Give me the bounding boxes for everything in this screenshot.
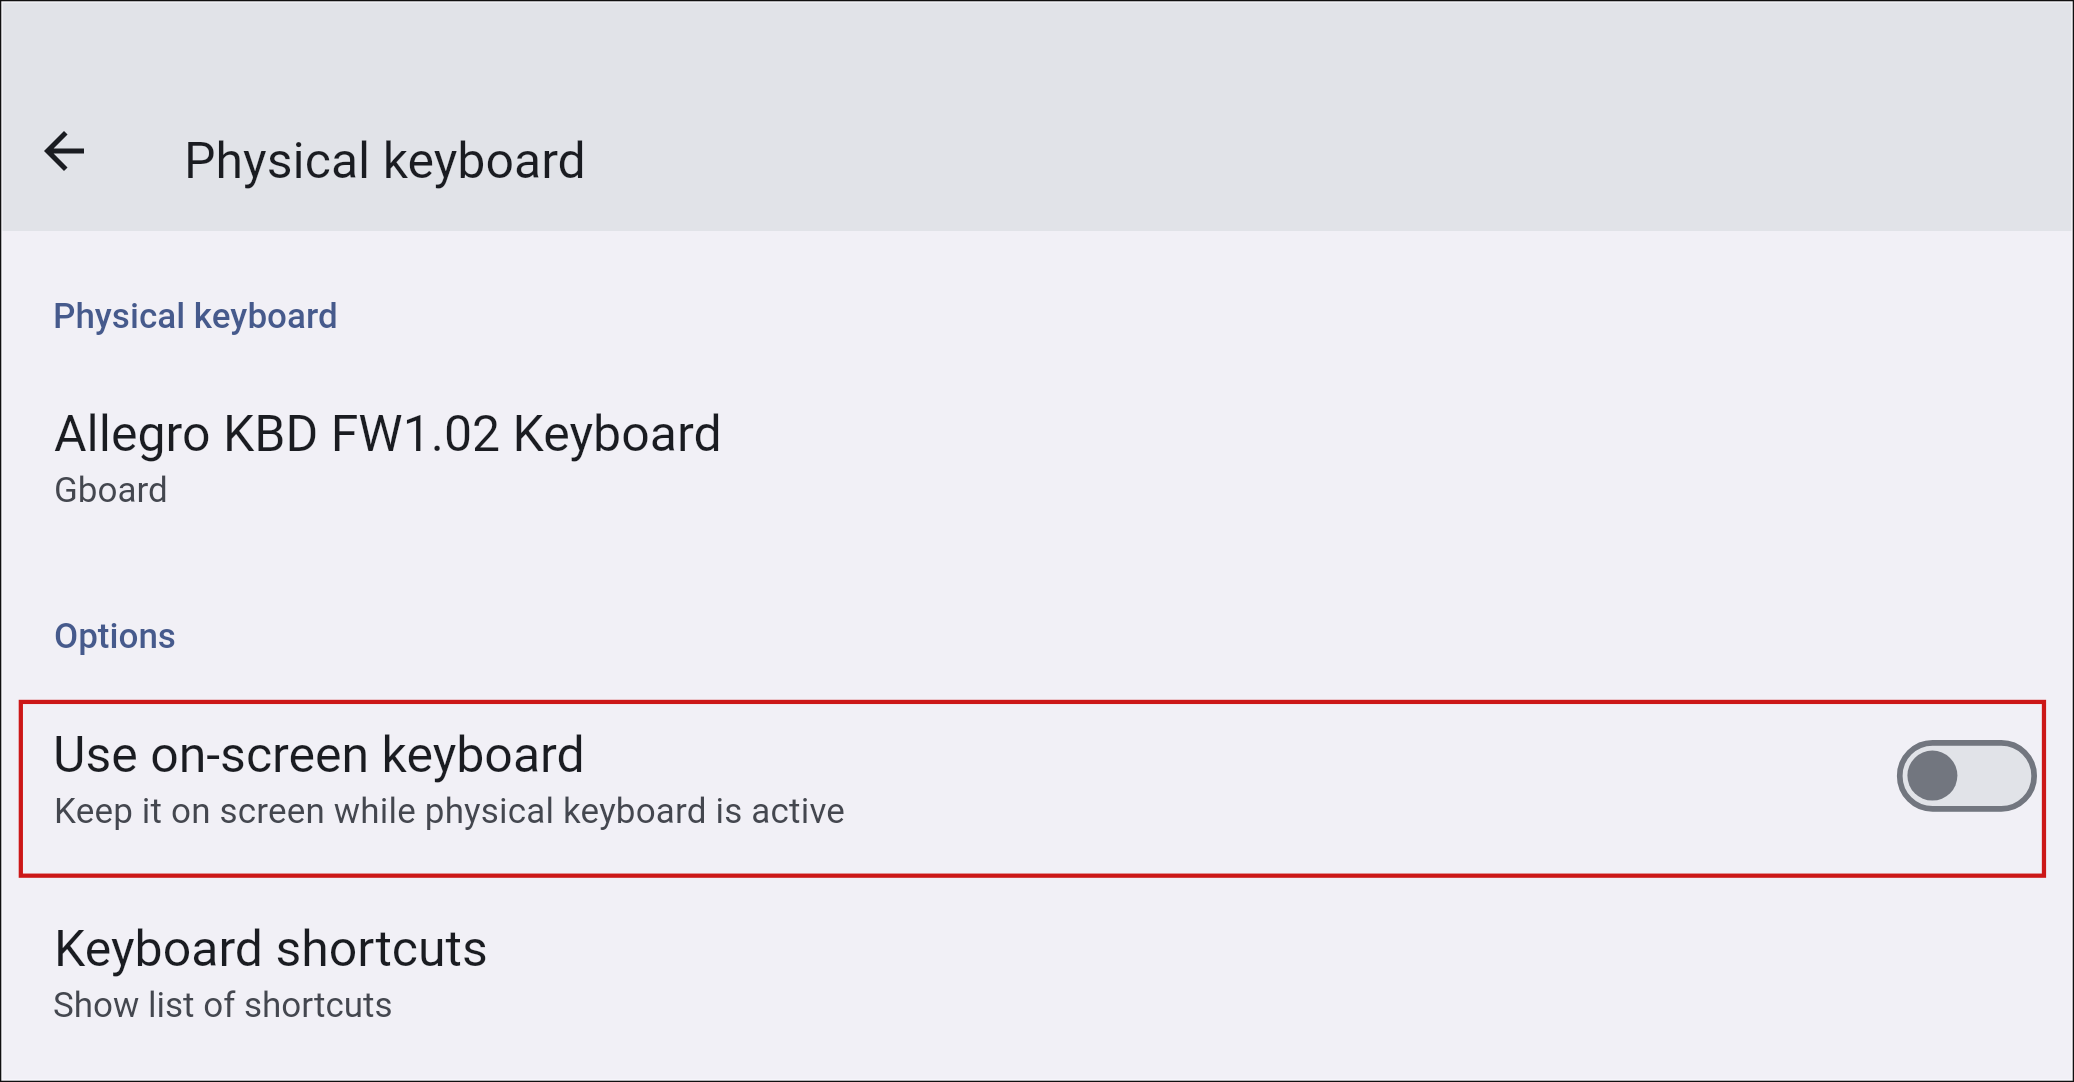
staticText: Use on-screen keyboard	[53, 726, 585, 785]
staticText: Allegro KBD FW1.02 Keyboard	[54, 405, 722, 464]
staticText: Options	[54, 616, 176, 657]
staticText: Show list of shortcuts	[53, 985, 393, 1026]
button[interactable]: Use on-screen keyboard	[0, 700, 2074, 878]
staticText: Keep it on screen while physical keyboar…	[54, 791, 846, 832]
staticText: Keyboard shortcuts	[54, 920, 488, 979]
button[interactable]: Use on-screen keyboard	[1880, 723, 2055, 828]
button[interactable]: Keyboard shortcuts	[0, 887, 2074, 1047]
staticText: Physical keyboard	[184, 132, 586, 191]
button[interactable]: Back	[14, 101, 114, 201]
button[interactable]: Allegro KBD FW1.02 Keyboard	[0, 372, 2074, 532]
staticText: Physical keyboard	[53, 296, 338, 337]
staticText: Gboard	[54, 470, 168, 511]
